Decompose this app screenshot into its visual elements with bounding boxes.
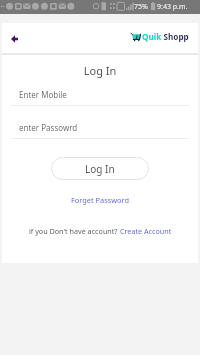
staticText: Log In [85, 162, 115, 176]
button[interactable]: Create Account [120, 226, 172, 236]
button[interactable]: Quik Shopp [131, 31, 189, 42]
button[interactable]: Forget Password [2, 195, 198, 205]
staticText: Enter Mobile [19, 89, 67, 100]
staticText: Quik Shopp [142, 31, 189, 42]
button[interactable]: Log In [51, 157, 149, 180]
staticText: if you Don't have account? [29, 226, 120, 236]
staticText: 75% [134, 2, 148, 12]
staticText: Log In [2, 63, 198, 78]
button[interactable]: Enter Mobile [11, 89, 189, 106]
button[interactable]: enter Passowrd [11, 122, 189, 139]
staticText: 9:43 p.m. [157, 2, 188, 12]
staticText: enter Passowrd [19, 122, 78, 133]
button[interactable]: Back [8, 32, 21, 45]
